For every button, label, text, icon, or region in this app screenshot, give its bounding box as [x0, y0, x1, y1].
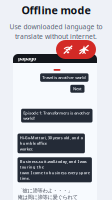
staticText: Use downloaded language to	[9, 22, 102, 31]
staticText: papago	[18, 55, 36, 62]
staticText: Episode 1: Transformers is another world…	[23, 110, 90, 121]
staticText: town I came to business every spare time…	[20, 170, 90, 181]
staticText: Hi-Go-Mottari, 30 years old, and a humbl…	[20, 135, 83, 146]
staticText: worker.	[20, 146, 33, 152]
staticText: translate without internet.	[15, 32, 97, 41]
staticText: Offline mode	[21, 3, 90, 17]
staticText: 俺は岡に諦等に愛ぐられて	[17, 194, 77, 200]
staticText: Travel is another world	[42, 75, 86, 80]
staticText: Business-suit-wall-today, and I was tour…	[20, 159, 87, 169]
staticText: 「彼に諦等わよ・・・」	[17, 187, 72, 194]
staticText: Next	[73, 86, 82, 91]
